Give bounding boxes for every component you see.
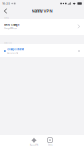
button[interactable]: Setting xyxy=(42,135,58,149)
staticText: Select one xyxy=(4,42,12,44)
staticText: Change WAN type xyxy=(4,28,17,29)
staticText: Setting xyxy=(4,17,9,19)
staticText: Nanny VPN xyxy=(31,9,52,13)
button[interactable]: WAN Change xyxy=(0,19,84,35)
staticText: Orange Internet xyxy=(7,48,24,51)
staticText: Internet profile xyxy=(7,52,18,54)
staticText: 10:25 xyxy=(2,2,10,5)
staticText: Setting xyxy=(47,144,52,146)
button[interactable]: Orange Internet xyxy=(0,44,84,57)
staticText: WAN Change xyxy=(4,23,19,26)
button[interactable]: Back xyxy=(0,7,11,14)
button[interactable]: Nanny VPN xyxy=(26,135,42,149)
staticText: Nanny VPN xyxy=(30,144,38,146)
